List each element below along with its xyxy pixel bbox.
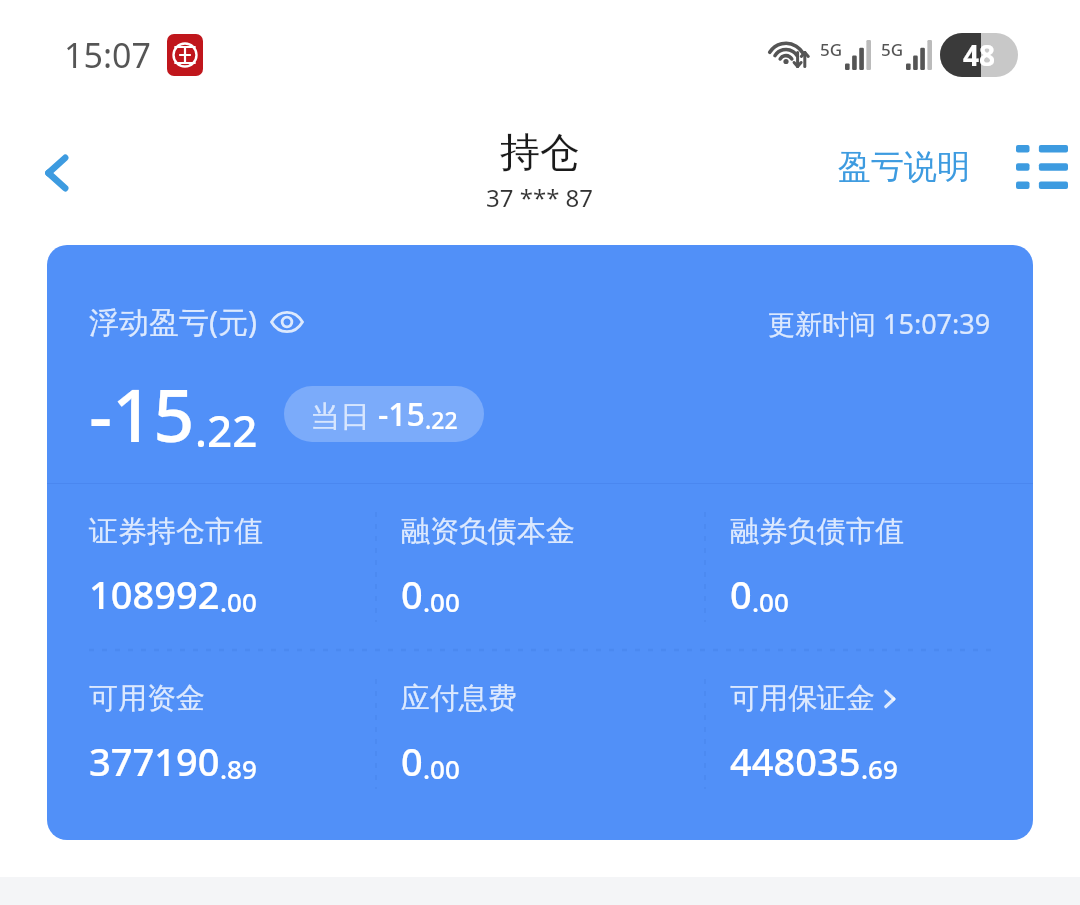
button[interactable]: 盈亏说明 xyxy=(828,136,980,198)
staticText: .00 xyxy=(423,751,460,786)
staticText: 当日 xyxy=(310,395,378,436)
staticText: .22 xyxy=(425,404,458,435)
staticText: 48 xyxy=(963,36,996,74)
staticText: .69 xyxy=(861,751,898,786)
staticText: 448035 xyxy=(730,735,861,787)
button[interactable]: 浮动盈亏(元) xyxy=(89,301,305,342)
staticText: 融券负债市值 xyxy=(730,513,904,550)
button[interactable]: 返回 xyxy=(22,137,94,209)
staticText: 应付息费 xyxy=(401,680,517,717)
staticText: 更新时间 15:07:39 xyxy=(768,305,991,342)
button[interactable]: 可用保证金 xyxy=(704,651,1033,816)
staticText: 证券持仓市值 xyxy=(89,513,263,550)
staticText: 盈亏说明 xyxy=(838,146,970,188)
staticText: 持仓 xyxy=(500,127,580,177)
staticText: 融资负债本金 xyxy=(401,513,575,550)
staticText: 377190 xyxy=(89,735,220,787)
button[interactable]: 菜单 xyxy=(1004,129,1080,205)
staticText: 0 xyxy=(401,568,423,620)
staticText: 0 xyxy=(730,568,752,620)
staticText: .00 xyxy=(752,584,789,619)
staticText: 0 xyxy=(401,735,423,787)
staticText: 108992 xyxy=(89,568,220,620)
staticText: 15:07 xyxy=(64,32,151,78)
staticText: 可用资金 xyxy=(89,680,205,717)
staticText: 5G xyxy=(820,38,843,61)
staticText: 浮动盈亏(元) xyxy=(89,301,257,342)
staticText: 5G xyxy=(881,38,904,61)
staticText: -15 xyxy=(378,392,425,436)
staticText: .89 xyxy=(220,751,257,786)
staticText: .00 xyxy=(423,584,460,619)
staticText: -15 xyxy=(89,365,195,463)
staticText: 37 *** 87 xyxy=(486,181,594,214)
staticText: .22 xyxy=(195,400,258,460)
staticText: .00 xyxy=(220,584,257,619)
staticText: 可用保证金 xyxy=(730,680,875,717)
